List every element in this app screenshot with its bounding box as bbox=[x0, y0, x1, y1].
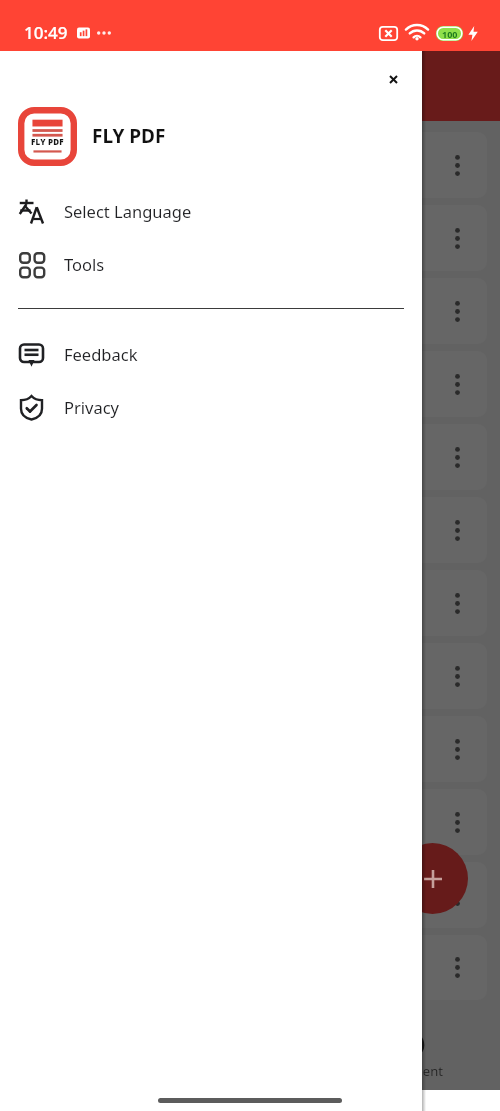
staticText: Report_final.pdf bbox=[75, 218, 188, 238]
button[interactable]: Manual.pdf bbox=[13, 570, 487, 636]
button[interactable]: Receipt_0912.pdf bbox=[13, 424, 487, 490]
button[interactable]: More options bbox=[443, 351, 487, 417]
staticText: Tools bbox=[64, 253, 105, 275]
button[interactable]: More options bbox=[443, 278, 487, 344]
staticText: Document bbox=[379, 1062, 443, 1080]
button[interactable]: Scanned_doc.pdf bbox=[13, 278, 487, 344]
button[interactable]: Invoice_2024.pdf bbox=[13, 132, 487, 198]
staticText: 100 bbox=[442, 28, 458, 40]
staticText: Feedback bbox=[64, 343, 138, 365]
button[interactable]: More options bbox=[443, 570, 487, 636]
button[interactable]: More options bbox=[443, 862, 487, 928]
button[interactable]: Document bbox=[326, 1000, 496, 1090]
staticText: Select Language bbox=[64, 200, 192, 222]
staticText: Scanned_doc.pdf bbox=[75, 291, 195, 311]
button[interactable]: More options bbox=[443, 205, 487, 271]
button[interactable]: More options bbox=[443, 132, 487, 198]
button[interactable]: More options bbox=[443, 935, 487, 1000]
button[interactable]: More options bbox=[443, 643, 487, 709]
staticText: Invoice_2024.pdf bbox=[75, 145, 195, 165]
staticText: FLY PDF bbox=[31, 136, 64, 147]
staticText: 12 Mar 2024 • 1.2 MB bbox=[75, 388, 201, 404]
button[interactable]: Report_final.pdf bbox=[13, 716, 487, 782]
button[interactable]: More options bbox=[443, 716, 487, 782]
button[interactable]: Receipt_0912.pdf bbox=[13, 935, 487, 1000]
staticText: 10:49 bbox=[24, 21, 68, 44]
staticText: Privacy bbox=[64, 396, 120, 418]
button[interactable]: Invoice_2024.pdf bbox=[13, 643, 487, 709]
button[interactable]: Scanned_doc.pdf bbox=[13, 789, 487, 855]
button[interactable]: Contract.pdf bbox=[13, 862, 487, 928]
button[interactable]: Privacy bbox=[0, 380, 422, 433]
button[interactable]: More options bbox=[443, 789, 487, 855]
button[interactable]: Select Language bbox=[0, 184, 422, 237]
button[interactable]: Contract.pdf bbox=[13, 351, 487, 417]
staticText: FLY PDF bbox=[92, 123, 166, 149]
button[interactable]: Close bbox=[378, 63, 408, 93]
button[interactable]: Notes.pdf bbox=[13, 497, 487, 563]
button[interactable]: More options bbox=[443, 497, 487, 563]
button[interactable]: Tools bbox=[0, 237, 422, 290]
button[interactable]: Add bbox=[397, 843, 468, 914]
button[interactable]: Feedback bbox=[0, 327, 422, 380]
button[interactable]: More options bbox=[443, 424, 487, 490]
button[interactable]: Report_final.pdf bbox=[13, 205, 487, 271]
